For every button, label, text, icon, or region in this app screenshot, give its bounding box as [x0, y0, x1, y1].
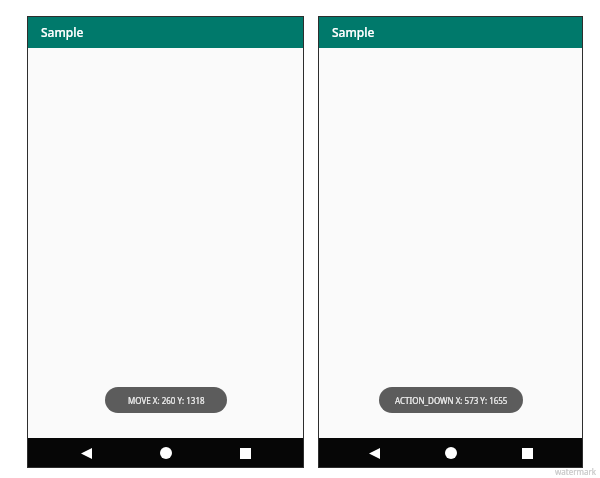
button[interactable]: MOVE X: 260 Y: 1318: [105, 387, 227, 413]
button[interactable]: Home: [431, 438, 471, 468]
button[interactable]: Sample: [27, 16, 304, 48]
button[interactable]: Recents: [507, 438, 547, 468]
button[interactable]: Recents: [225, 438, 265, 468]
button[interactable]: Back: [66, 438, 106, 468]
staticText: ACTION_DOWN X: 573 Y: 1655: [395, 395, 508, 406]
staticText: watermark: [555, 466, 597, 477]
button[interactable]: Sample: [318, 16, 583, 48]
staticText: Sample: [332, 24, 375, 40]
staticText: Sample: [41, 24, 84, 40]
button[interactable]: ACTION_DOWN X: 573 Y: 1655: [379, 387, 523, 413]
button[interactable]: Back: [354, 438, 394, 468]
button[interactable]: Home: [146, 438, 186, 468]
staticText: MOVE X: 260 Y: 1318: [128, 395, 205, 406]
